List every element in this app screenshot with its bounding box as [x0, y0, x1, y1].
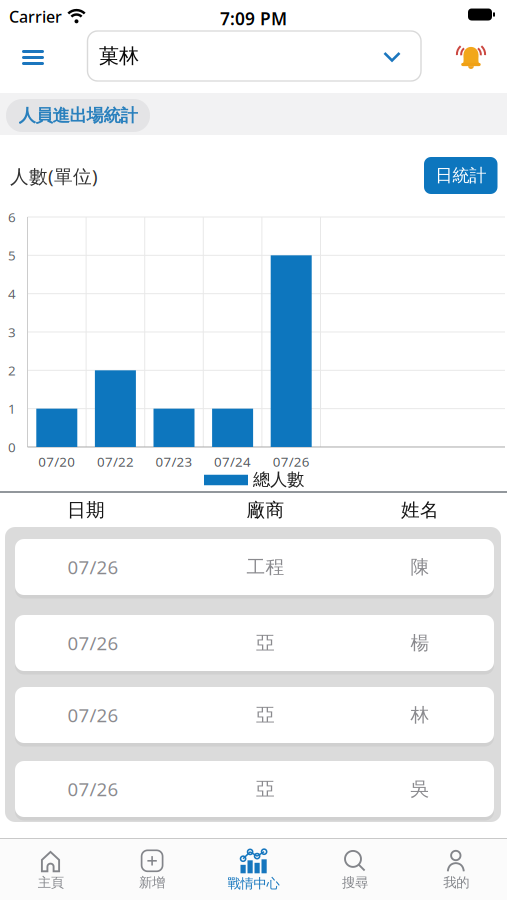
- button[interactable]: 日統計: [424, 157, 497, 194]
- staticText: 工程: [246, 555, 284, 578]
- staticText: 5: [8, 246, 16, 264]
- staticText: 7:09 PM: [220, 7, 287, 30]
- staticText: 6: [8, 208, 16, 226]
- staticText: 07/26: [67, 631, 118, 655]
- staticText: 戰情中心: [227, 875, 279, 892]
- staticText: 07/22: [97, 453, 134, 470]
- staticText: 亞: [256, 777, 275, 800]
- staticText: 1: [8, 400, 16, 417]
- button[interactable]: 07/26: [15, 615, 494, 671]
- staticText: 亞: [256, 631, 275, 654]
- button[interactable]: 07/26: [15, 687, 494, 743]
- staticText: 菓林: [99, 44, 139, 68]
- staticText: 2: [8, 361, 16, 379]
- staticText: 搜尋: [342, 874, 368, 891]
- staticText: 3: [8, 323, 16, 341]
- staticText: 我的: [443, 874, 469, 891]
- button[interactable]: 主頁: [0, 842, 101, 898]
- button[interactable]: 我的: [406, 842, 507, 898]
- staticText: 主頁: [38, 874, 64, 891]
- staticText: 廠商: [246, 498, 284, 521]
- staticText: 4: [8, 285, 16, 302]
- staticText: 新增: [139, 874, 165, 891]
- staticText: Carrier: [9, 6, 62, 27]
- button[interactable]: 07/26: [15, 761, 494, 817]
- staticText: 07/26: [67, 777, 118, 801]
- button[interactable]: Notifications: [450, 38, 492, 76]
- staticText: 07/24: [214, 453, 251, 470]
- staticText: 日統計: [435, 165, 486, 186]
- staticText: 楊: [410, 631, 429, 654]
- staticText: 07/26: [67, 555, 118, 579]
- button[interactable]: 戰情中心: [203, 842, 304, 898]
- staticText: 0: [8, 438, 16, 456]
- staticText: 07/20: [38, 453, 75, 470]
- button[interactable]: 搜尋: [304, 842, 406, 898]
- staticText: 亞: [256, 703, 275, 726]
- staticText: 07/23: [155, 453, 192, 470]
- staticText: 07/26: [67, 703, 118, 727]
- staticText: 日期: [67, 498, 105, 521]
- staticText: 吳: [410, 777, 429, 800]
- staticText: 林: [410, 703, 429, 726]
- staticText: 人員進出場統計: [18, 105, 137, 126]
- staticText: 陳: [410, 555, 429, 578]
- button[interactable]: Menu: [16, 43, 50, 72]
- staticText: 07/26: [273, 453, 310, 470]
- button[interactable]: 新增: [101, 842, 203, 898]
- staticText: 總人數: [253, 469, 304, 490]
- staticText: 人數(單位): [10, 164, 98, 188]
- button[interactable]: 07/26: [15, 539, 494, 595]
- button[interactable]: 菓林: [87, 31, 421, 81]
- staticText: 姓名: [401, 498, 439, 521]
